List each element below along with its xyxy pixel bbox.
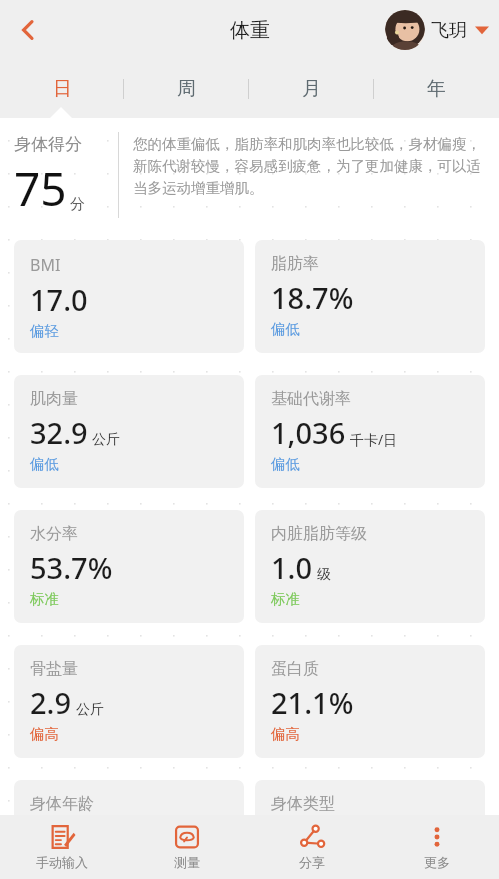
button[interactable]: BMI <box>14 240 244 353</box>
staticText: 身体类型 <box>271 794 335 814</box>
staticText: 75 <box>14 157 67 220</box>
staticText: 18.7% <box>271 278 354 317</box>
button[interactable]: 内脏脂肪等级 <box>255 510 485 623</box>
staticText: 偏低 <box>30 455 59 473</box>
button[interactable]: 测量 <box>124 815 249 879</box>
staticText: 标准 <box>30 590 59 608</box>
button[interactable]: 肌肉量 <box>14 375 244 488</box>
staticText: 偏低 <box>271 320 300 338</box>
other: 分享 <box>299 824 325 850</box>
staticText: 1.0 <box>271 548 313 587</box>
staticText: 脂肪率 <box>271 254 319 274</box>
button[interactable]: 身体年龄 <box>14 780 244 879</box>
staticText: 公斤 <box>76 701 104 719</box>
staticText: 月 <box>302 77 321 101</box>
button[interactable]: 日 <box>0 60 124 118</box>
button[interactable]: 返回 <box>6 8 50 52</box>
button[interactable]: 月 <box>249 60 374 118</box>
other: 测量 <box>174 824 200 850</box>
staticText: 偏高 <box>30 725 59 743</box>
staticText: 级 <box>317 566 331 584</box>
staticText: 手动输入 <box>36 854 88 870</box>
button[interactable]: 脂肪率 <box>255 240 485 353</box>
button[interactable]: 身体类型 <box>255 780 485 879</box>
staticText: 测量 <box>174 854 200 870</box>
button[interactable]: 周 <box>124 60 249 118</box>
staticText: 千卡/日 <box>350 430 398 449</box>
staticText: 飞玥 <box>431 19 467 42</box>
staticText: 2.9 <box>30 683 72 722</box>
button[interactable]: 蛋白质 <box>255 645 485 758</box>
staticText: 偏高 <box>271 725 300 743</box>
other: 手动输入 <box>49 824 75 850</box>
staticText: 水分率 <box>30 524 78 544</box>
button[interactable]: 手动输入 <box>0 815 124 879</box>
staticText: 基础代谢率 <box>271 389 351 409</box>
staticText: 肌肉量 <box>30 389 78 409</box>
button[interactable]: 年 <box>374 60 499 118</box>
staticText: 32.9 <box>30 413 88 452</box>
staticText: 周 <box>177 77 196 101</box>
staticText: 更多 <box>424 854 450 870</box>
staticText: 您的体重偏低，脂肪率和肌肉率也比较低，身材偏瘦，新陈代谢较慢，容易感到疲惫，为了… <box>133 135 485 198</box>
staticText: 分享 <box>299 854 325 870</box>
staticText: 体重 <box>230 18 270 43</box>
staticText: 蛋白质 <box>271 659 319 679</box>
staticText: 偏瘦型 <box>271 818 358 855</box>
button[interactable]: 分享 <box>249 815 374 879</box>
button[interactable]: 水分率 <box>14 510 244 623</box>
staticText: 18 <box>30 818 64 857</box>
staticText: 标准 <box>271 590 300 608</box>
staticText: 公斤 <box>92 431 120 449</box>
staticText: 身体年龄 <box>30 794 94 814</box>
button[interactable]: 更多 <box>374 815 499 879</box>
staticText: 日 <box>53 77 72 101</box>
staticText: 21.1% <box>271 683 354 722</box>
button[interactable]: 飞玥 <box>385 10 489 50</box>
staticText: 分 <box>70 195 85 214</box>
staticText: BMI <box>30 254 61 276</box>
staticText: 1,036 <box>271 413 346 452</box>
staticText: 偏轻 <box>30 322 59 340</box>
staticText: 偏低 <box>271 455 300 473</box>
staticText: 内脏脂肪等级 <box>271 524 367 544</box>
staticText: 17.0 <box>30 280 88 319</box>
staticText: 身体得分 <box>14 134 82 155</box>
staticText: 年 <box>427 77 446 101</box>
staticText: 53.7% <box>30 548 113 587</box>
button[interactable]: 基础代谢率 <box>255 375 485 488</box>
other: 更多 <box>424 824 450 850</box>
staticText: 骨盐量 <box>30 659 78 679</box>
button[interactable]: 骨盐量 <box>14 645 244 758</box>
